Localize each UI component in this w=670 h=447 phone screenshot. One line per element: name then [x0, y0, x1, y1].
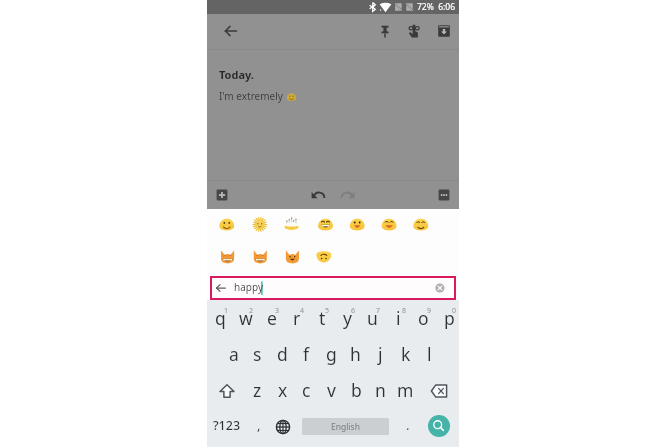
button[interactable]: k	[393, 341, 418, 367]
button[interactable]: Undo	[305, 182, 331, 208]
button[interactable]: a	[221, 341, 246, 367]
button[interactable]: Archive	[431, 18, 457, 44]
staticText: happy	[234, 280, 263, 294]
button[interactable]: English	[302, 418, 389, 435]
staticText: t	[319, 306, 326, 330]
button[interactable]: Pin	[372, 18, 398, 44]
button[interactable]: More options	[431, 182, 457, 208]
staticText: u	[367, 306, 378, 330]
staticText: .	[406, 416, 410, 434]
staticText: 1	[224, 306, 229, 316]
button[interactable]: j	[368, 341, 393, 367]
button[interactable]: o	[411, 305, 436, 331]
staticText: 2	[249, 306, 254, 316]
staticText: 0	[452, 306, 457, 316]
button[interactable]: Add	[209, 182, 235, 208]
staticText: m	[397, 378, 414, 402]
button[interactable]: Shift	[212, 377, 242, 405]
staticText: English	[331, 421, 360, 433]
button[interactable]: e	[259, 305, 284, 331]
staticText: e	[267, 306, 277, 330]
button[interactable]: p	[437, 305, 462, 331]
staticText: v	[327, 378, 336, 402]
staticText: 5	[325, 306, 330, 316]
staticText: k	[401, 342, 411, 366]
button[interactable]: n	[368, 377, 393, 403]
button[interactable]: b	[344, 377, 369, 403]
staticText: 3	[275, 306, 280, 316]
staticText: 9	[427, 306, 432, 316]
staticText: ,	[257, 416, 261, 434]
staticText: 72% 6:06	[417, 1, 456, 13]
button[interactable]: Back	[217, 17, 245, 45]
staticText: i	[396, 306, 401, 330]
button[interactable]: g	[319, 341, 344, 367]
staticText: q	[215, 306, 226, 330]
staticText: y	[343, 306, 352, 330]
staticText: 8	[402, 306, 407, 316]
staticText: a	[229, 342, 239, 366]
staticText: f	[303, 342, 310, 366]
staticText: Today.	[219, 67, 254, 82]
button[interactable]: ,	[248, 412, 270, 438]
button[interactable]: s	[245, 341, 270, 367]
staticText: 6	[351, 306, 356, 316]
button[interactable]: Change language	[270, 414, 296, 440]
button[interactable]: i	[386, 305, 411, 331]
button[interactable]: x	[270, 377, 295, 403]
button[interactable]: l	[417, 341, 442, 367]
button[interactable]: q	[208, 305, 233, 331]
button[interactable]: .	[397, 412, 419, 438]
staticText: x	[278, 378, 288, 402]
staticText: b	[351, 378, 362, 402]
button[interactable]: ?123	[210, 411, 244, 439]
staticText: I'm extremely	[219, 89, 286, 103]
staticText: ?123	[213, 417, 241, 434]
button[interactable]: Search	[425, 412, 453, 440]
staticText: w	[239, 306, 253, 330]
staticText: 4	[300, 306, 305, 316]
button[interactable]: Redo	[335, 182, 361, 208]
button[interactable]: happy	[212, 278, 454, 298]
staticText: g	[326, 342, 337, 366]
button[interactable]: t	[310, 305, 335, 331]
button[interactable]: d	[270, 341, 295, 367]
button[interactable]: c	[294, 377, 319, 403]
staticText: 7	[376, 306, 381, 316]
staticText: c	[302, 378, 311, 402]
staticText: l	[427, 342, 432, 366]
button[interactable]: f	[294, 341, 319, 367]
staticText: s	[253, 342, 262, 366]
button[interactable]: h	[343, 341, 368, 367]
button[interactable]: Backspace	[424, 377, 454, 405]
staticText: r	[293, 306, 301, 330]
staticText: j	[378, 342, 383, 366]
button[interactable]: u	[360, 305, 385, 331]
staticText: h	[350, 342, 361, 366]
button[interactable]: Reminder	[401, 18, 427, 44]
staticText: z	[253, 378, 262, 402]
staticText: o	[418, 306, 429, 330]
staticText: d	[277, 342, 288, 366]
button[interactable]: m	[393, 377, 418, 403]
button[interactable]: y	[335, 305, 360, 331]
staticText: p	[444, 306, 455, 330]
button[interactable]: w	[233, 305, 258, 331]
staticText: n	[375, 378, 386, 402]
button[interactable]: z	[245, 377, 270, 403]
button[interactable]: r	[284, 305, 309, 331]
button[interactable]: v	[319, 377, 344, 403]
